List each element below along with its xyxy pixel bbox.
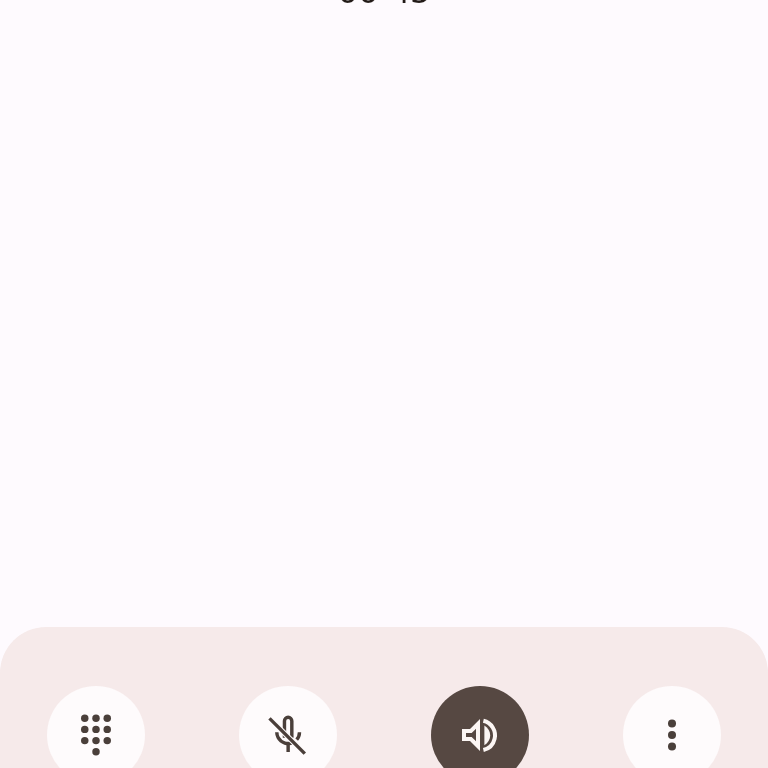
staticText: 00 (337, 0, 379, 14)
button[interactable]: Mute microphone (239, 686, 337, 768)
staticText: 45 (389, 0, 431, 14)
button[interactable]: Speaker (431, 686, 529, 768)
button[interactable]: Dialpad (47, 686, 145, 768)
button[interactable]: More options (623, 686, 721, 768)
